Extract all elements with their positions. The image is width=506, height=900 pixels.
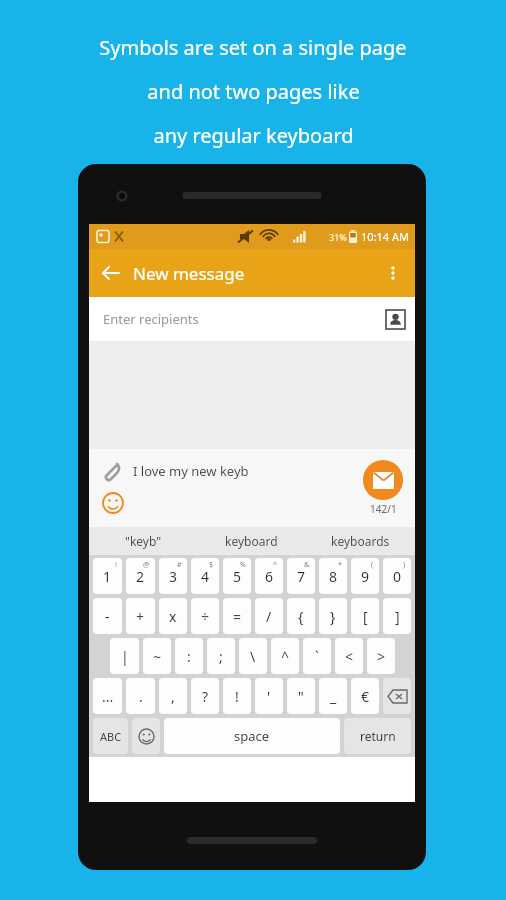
staticText: and not two pages like — [147, 78, 360, 105]
staticText: - — [105, 607, 110, 626]
button[interactable]: , — [159, 678, 187, 714]
staticText: Symbols are set on a single page — [99, 34, 407, 61]
staticText: / — [266, 607, 272, 626]
button[interactable]: "keyb" — [89, 527, 197, 555]
button[interactable]: 6 — [255, 558, 283, 594]
staticText: New message — [133, 262, 245, 285]
staticText: 10:14 AM — [361, 229, 409, 244]
staticText: 6 — [265, 567, 274, 586]
button[interactable]: ÷ — [191, 598, 219, 634]
staticText: < — [345, 647, 354, 666]
staticText: @ — [143, 560, 150, 570]
button[interactable]: 4 — [191, 558, 219, 594]
button[interactable]: ; — [207, 638, 235, 674]
button[interactable]: ABC — [93, 718, 128, 754]
button[interactable]: ... — [93, 678, 122, 714]
button[interactable]: Enter recipients — [89, 297, 415, 341]
button[interactable]: { — [287, 598, 315, 634]
button[interactable]: ` — [303, 638, 331, 674]
button[interactable]: _ — [319, 678, 347, 714]
staticText: ; — [219, 647, 223, 666]
button[interactable]: [ — [351, 598, 379, 634]
staticText: _ — [330, 687, 337, 706]
staticText: x — [169, 607, 177, 626]
button[interactable]: ] — [383, 598, 411, 634]
staticText: 5 — [233, 567, 242, 586]
staticText: ( — [371, 560, 374, 570]
staticText: ) — [403, 560, 406, 570]
button[interactable]: | — [110, 638, 139, 674]
button[interactable]: 5 — [223, 558, 251, 594]
button[interactable]: 0 — [383, 558, 411, 594]
staticText: { — [298, 607, 304, 626]
staticText: [ — [363, 607, 368, 626]
button[interactable]: : — [175, 638, 203, 674]
button[interactable]: 8 — [319, 558, 347, 594]
button[interactable]: } — [319, 598, 347, 634]
button[interactable]: space — [164, 718, 340, 754]
staticText: * — [338, 560, 342, 570]
button[interactable]: ? — [191, 678, 219, 714]
button[interactable]: € — [351, 678, 379, 714]
button[interactable]: 9 — [351, 558, 379, 594]
staticText: 3 — [169, 567, 178, 586]
staticText: , — [171, 687, 175, 706]
staticText: ^ — [281, 647, 290, 666]
button[interactable]: < — [335, 638, 363, 674]
button[interactable]: Emoji — [102, 492, 124, 514]
staticText: 2 — [136, 567, 145, 586]
button[interactable]: x — [159, 598, 187, 634]
staticText: € — [361, 687, 370, 706]
button[interactable]: 3 — [159, 558, 187, 594]
staticText: 7 — [297, 567, 306, 586]
button[interactable]: return — [344, 718, 411, 754]
staticText: I love my new keyb — [133, 462, 249, 480]
staticText: ^ — [273, 560, 278, 570]
staticText: = — [233, 607, 242, 626]
button[interactable]: - — [93, 598, 122, 634]
button[interactable]: = — [223, 598, 251, 634]
staticText: ÷ — [201, 607, 210, 626]
staticText: & — [304, 560, 310, 570]
staticText: ~ — [153, 647, 162, 666]
staticText: keyboard — [225, 533, 278, 549]
staticText: ! — [115, 560, 117, 570]
button[interactable]: ! — [223, 678, 251, 714]
staticText: 0 — [393, 567, 402, 586]
button[interactable]: Back — [89, 251, 133, 295]
staticText: > — [377, 647, 386, 666]
button[interactable]: 7 — [287, 558, 315, 594]
staticText: \ — [250, 647, 256, 666]
button[interactable]: keyboards — [306, 527, 415, 555]
button[interactable]: + — [126, 598, 155, 634]
staticText: " — [298, 687, 304, 706]
button[interactable]: ^ — [271, 638, 299, 674]
staticText: space — [234, 727, 270, 745]
staticText: any regular keyboard — [153, 122, 354, 149]
staticText: : — [187, 647, 191, 666]
staticText: Enter recipients — [103, 310, 199, 328]
button[interactable]: ~ — [143, 638, 171, 674]
button[interactable]: \ — [239, 638, 267, 674]
staticText: "keyb" — [125, 533, 162, 549]
staticText: ] — [395, 607, 400, 626]
button[interactable]: Emoji — [132, 718, 160, 754]
button[interactable]: 2 — [126, 558, 155, 594]
staticText: | — [121, 647, 129, 666]
button[interactable]: . — [126, 678, 155, 714]
staticText: ABC — [100, 729, 122, 744]
button[interactable]: ' — [255, 678, 283, 714]
button[interactable]: 1 — [93, 558, 122, 594]
button[interactable]: > — [367, 638, 395, 674]
button[interactable]: " — [287, 678, 315, 714]
button[interactable]: Send — [363, 460, 403, 500]
staticText: % — [240, 560, 246, 570]
button[interactable]: Add contact — [375, 299, 415, 339]
button[interactable]: / — [255, 598, 283, 634]
staticText: 4 — [201, 567, 210, 586]
staticText: 9 — [361, 567, 370, 586]
button[interactable]: More options — [371, 251, 415, 295]
button[interactable]: keyboard — [197, 527, 306, 555]
button[interactable]: Backspace — [383, 678, 411, 714]
button[interactable]: Attach — [101, 459, 125, 483]
